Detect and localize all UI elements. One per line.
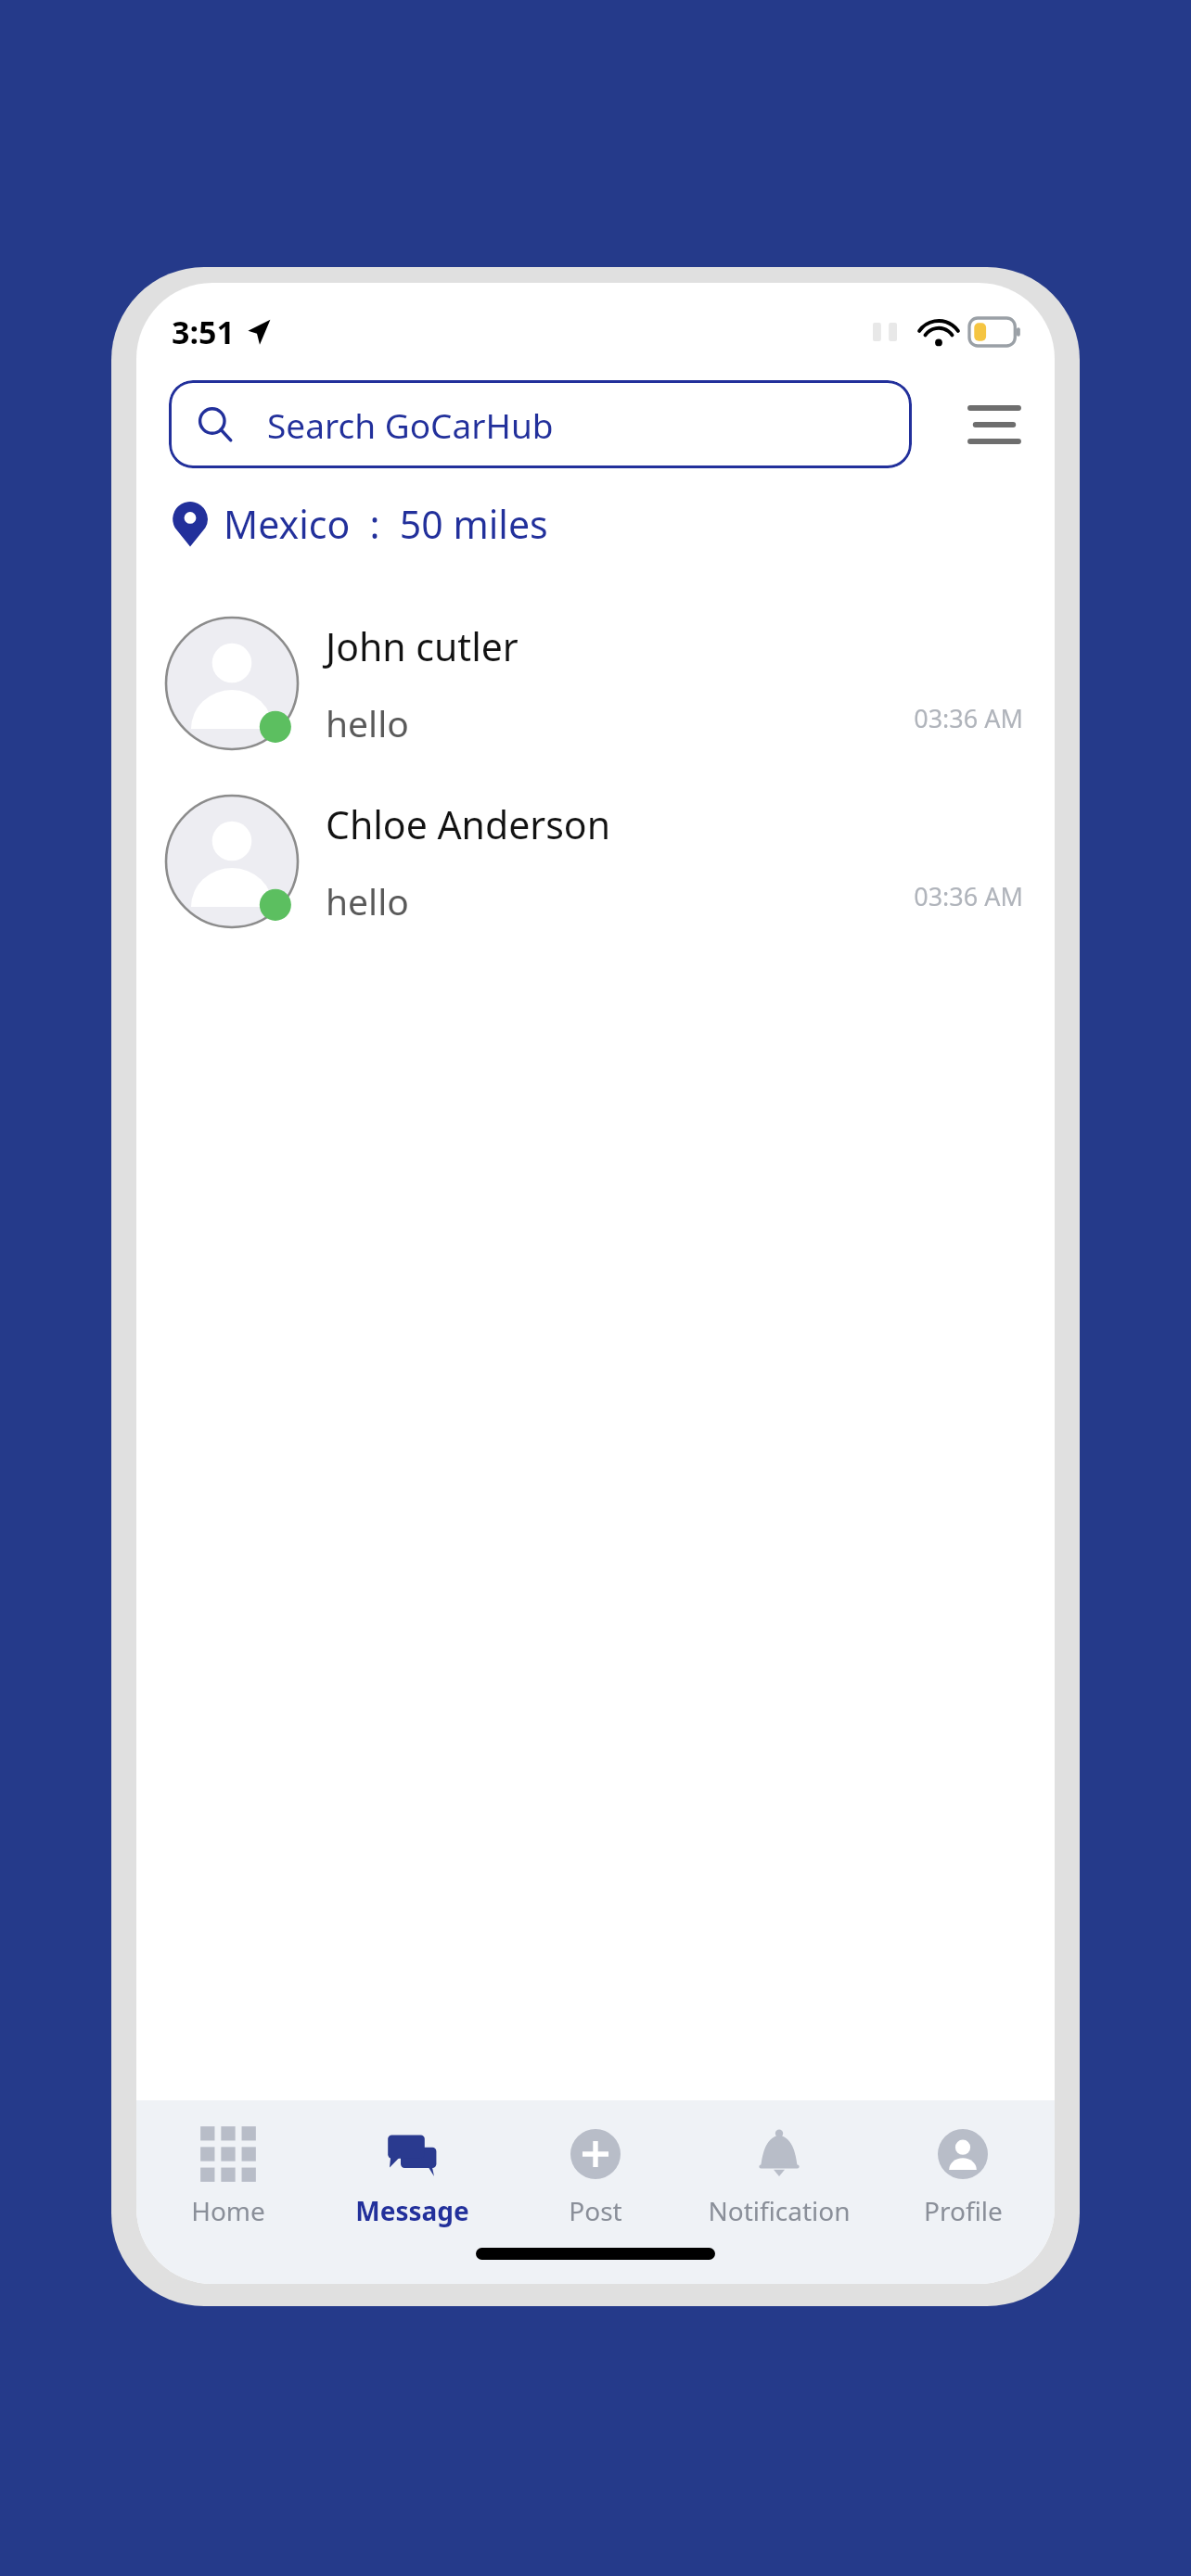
staticText: Mexico : 50 miles xyxy=(224,498,548,550)
button[interactable]: Post xyxy=(504,2121,687,2234)
staticText: Profile xyxy=(924,2193,1003,2228)
button[interactable]: Mexico : 50 miles xyxy=(172,498,1055,550)
staticText: hello xyxy=(326,698,409,747)
staticText: 03:36 AM xyxy=(914,701,1023,735)
staticText: Search GoCarHub xyxy=(267,402,554,448)
staticText: Message xyxy=(355,2193,469,2228)
staticText: Home xyxy=(191,2193,265,2228)
staticText: hello xyxy=(326,876,409,925)
staticText: Post xyxy=(569,2193,622,2228)
button[interactable]: Profile xyxy=(871,2121,1055,2234)
staticText: Notification xyxy=(708,2193,851,2228)
button[interactable]: Notification xyxy=(687,2121,871,2234)
staticText: 3:51 xyxy=(172,311,235,353)
staticText: John cutler xyxy=(326,620,519,672)
staticText: Chloe Anderson xyxy=(326,798,611,850)
button[interactable]: Chloe Anderson xyxy=(136,772,1055,950)
button[interactable]: Menu xyxy=(958,389,1031,461)
button[interactable]: Message xyxy=(320,2121,504,2234)
staticText: 03:36 AM xyxy=(914,879,1023,913)
button[interactable]: Home xyxy=(136,2121,320,2234)
button[interactable]: Search GoCarHub xyxy=(169,380,912,468)
button[interactable]: John cutler xyxy=(136,594,1055,772)
